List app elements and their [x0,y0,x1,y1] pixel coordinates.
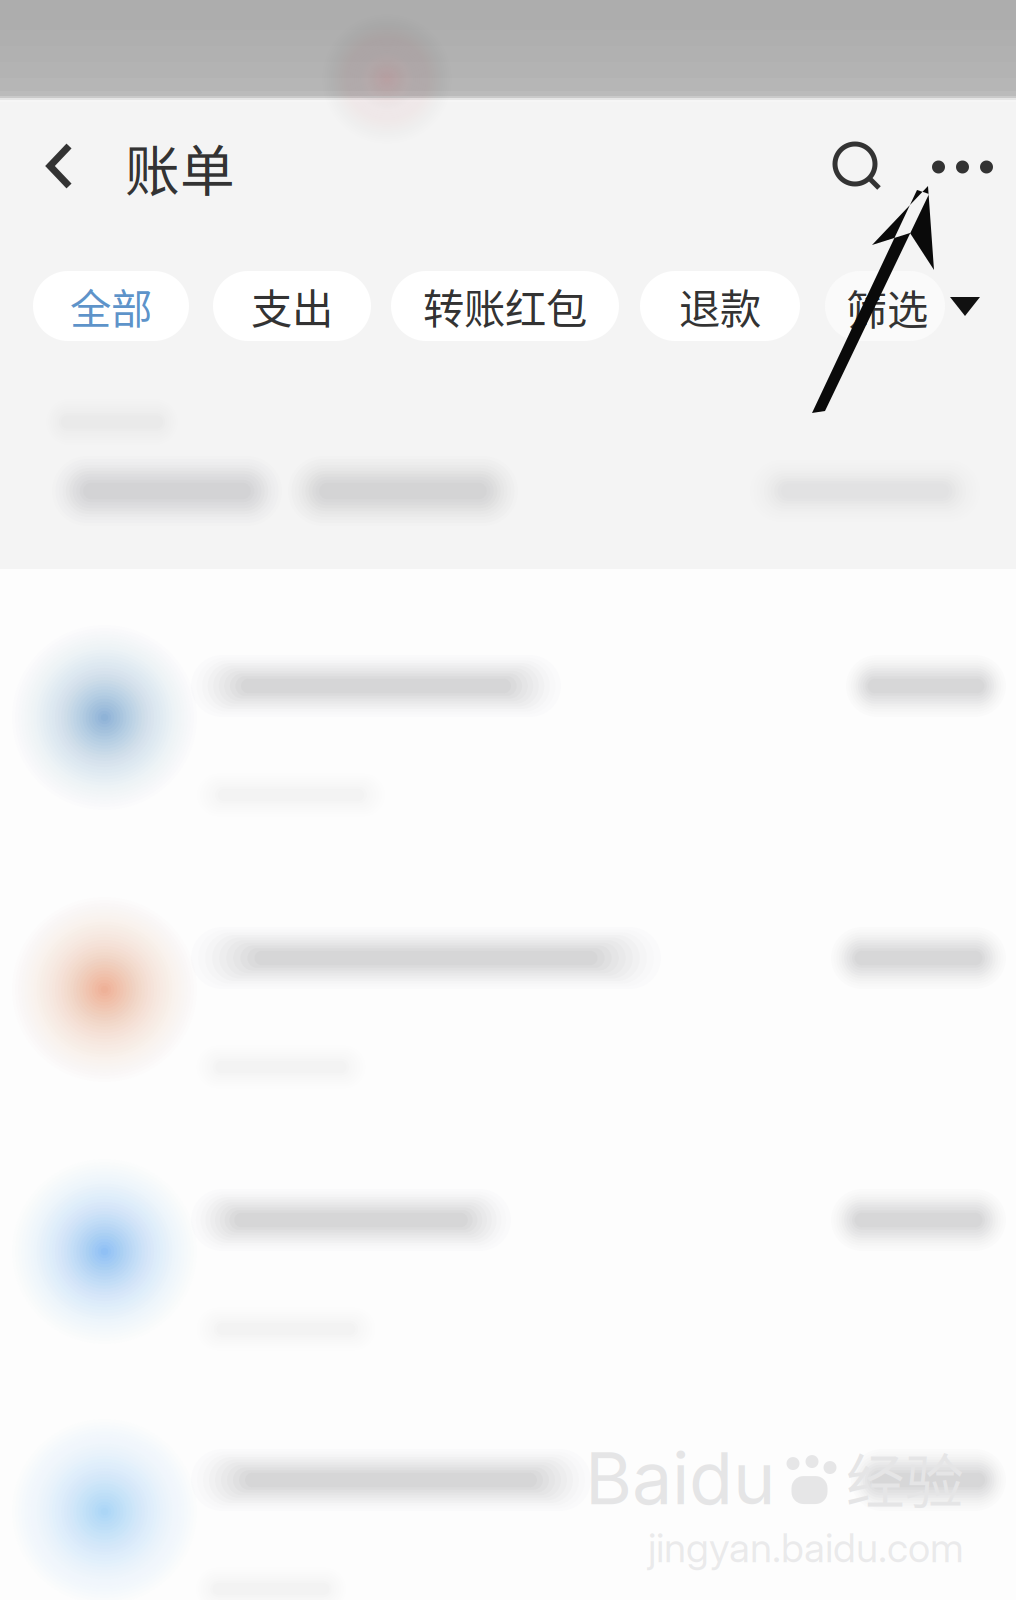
button[interactable] [0,619,1016,891]
button[interactable] [0,1413,1016,1600]
button[interactable]: More [909,102,1016,232]
button[interactable]: 退款 [640,271,800,341]
button[interactable]: 支出 [213,271,371,341]
staticText: jingyan.baidu.com [648,1524,964,1572]
staticText: 账单 [125,127,235,207]
staticText: 支出 [251,276,333,336]
staticText: 退款 [679,276,761,336]
staticText: 转账红包 [423,276,587,336]
staticText: 筛选 [846,277,928,337]
button[interactable] [0,1153,1016,1413]
staticText: 经验 [846,1436,964,1521]
staticText: 全部 [70,276,152,336]
button[interactable]: Back [0,102,125,232]
button[interactable]: 全部 [33,271,189,341]
button[interactable]: 筛选 [806,263,1016,351]
button[interactable] [0,891,1016,1153]
button[interactable]: 转账红包 [391,271,619,341]
button[interactable]: Search [803,102,909,232]
staticText: Baidu [585,1434,776,1522]
